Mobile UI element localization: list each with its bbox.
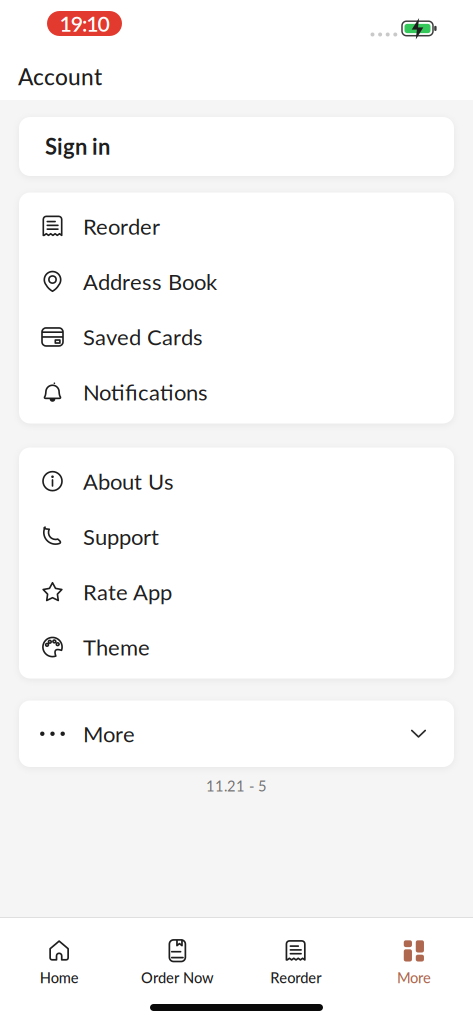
staticText: Theme	[83, 634, 150, 660]
button[interactable]: Address Book	[19, 254, 454, 309]
staticText: Support	[83, 523, 159, 550]
staticText: Sign in	[45, 133, 110, 159]
button[interactable]: Sign in	[19, 117, 454, 176]
staticText: Reorder	[83, 213, 160, 239]
staticText: Reorder	[270, 969, 321, 986]
staticText: Account	[18, 63, 102, 90]
button[interactable]: Reorder	[236, 936, 355, 988]
button[interactable]: Saved Cards	[19, 309, 454, 364]
staticText: Rate App	[83, 579, 172, 605]
staticText: More	[83, 721, 135, 747]
button[interactable]: Support	[19, 509, 454, 564]
staticText: More	[397, 969, 431, 986]
staticText: Home	[40, 969, 79, 986]
button[interactable]: Order Now	[118, 936, 236, 988]
staticText: 19:10	[60, 11, 109, 36]
button[interactable]: Theme	[19, 619, 454, 675]
staticText: Saved Cards	[83, 324, 203, 350]
button[interactable]: Reorder	[19, 198, 454, 254]
button[interactable]: Rate App	[19, 564, 454, 619]
button[interactable]: More	[355, 936, 473, 988]
staticText: Order Now	[141, 969, 214, 986]
staticText: 11.21 - 5	[206, 777, 267, 795]
button[interactable]: Notifications	[19, 364, 454, 420]
staticText: About Us	[83, 468, 174, 494]
staticText: Notifications	[83, 379, 208, 405]
button[interactable]: About Us	[19, 453, 454, 509]
staticText: Address Book	[83, 268, 217, 295]
button[interactable]: More	[19, 700, 454, 767]
button[interactable]: Home	[0, 936, 118, 988]
